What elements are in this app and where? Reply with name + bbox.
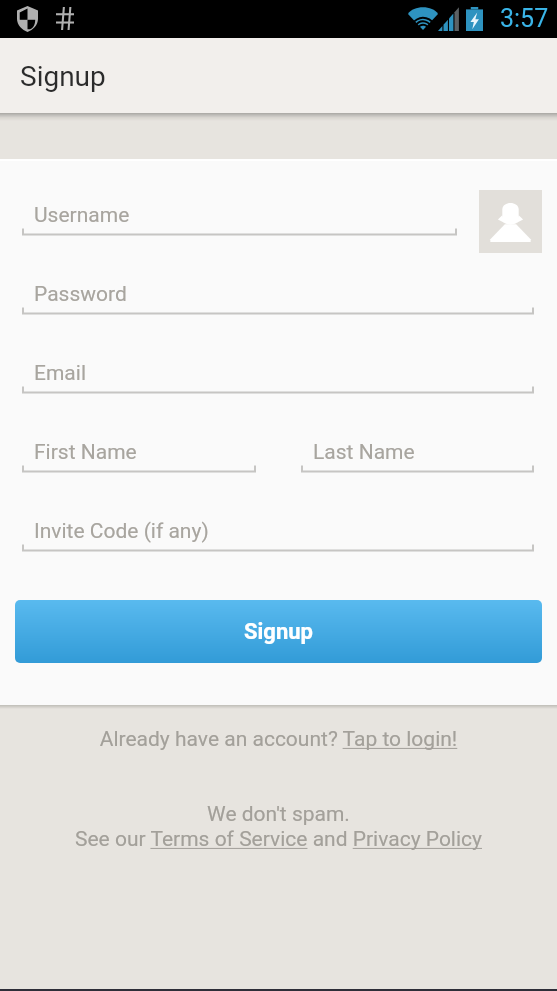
- button[interactable]: Username: [22, 186, 457, 236]
- button[interactable]: Email: [22, 344, 534, 394]
- button[interactable]: Invite Code (if any): [22, 502, 534, 552]
- button[interactable]: First Name: [22, 423, 256, 473]
- staticText: Invite Code (if any): [34, 519, 209, 544]
- button[interactable]: Last Name: [301, 423, 534, 473]
- staticText: Signup: [244, 619, 313, 645]
- staticText: First Name: [34, 440, 137, 465]
- staticText: We don't spam.: [0, 802, 557, 827]
- button[interactable]: See our Terms of Service and Privacy Pol…: [0, 827, 557, 852]
- button[interactable]: Signup: [15, 600, 542, 663]
- staticText: Email: [34, 361, 86, 386]
- staticText: Last Name: [313, 440, 415, 465]
- button[interactable]: Password: [22, 265, 534, 315]
- staticText: Signup: [20, 60, 106, 93]
- staticText: Already have an account? Tap to login!: [0, 727, 557, 752]
- staticText: 3:57: [500, 4, 549, 33]
- button[interactable]: Choose profile picture: [479, 190, 542, 253]
- staticText: Password: [34, 282, 127, 307]
- staticText: Username: [34, 203, 130, 228]
- button[interactable]: Already have an account? Tap to login!: [0, 727, 557, 752]
